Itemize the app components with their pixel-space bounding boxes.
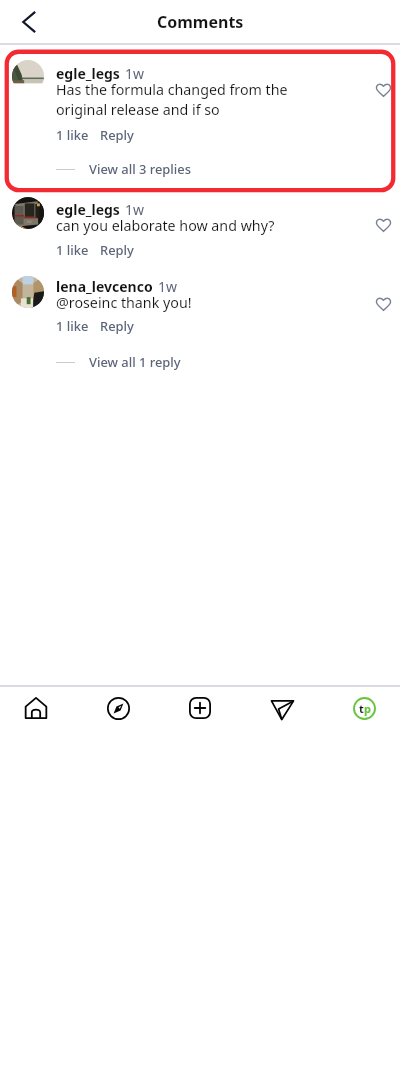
button[interactable]: 1 like xyxy=(56,241,89,259)
button[interactable]: Like xyxy=(370,76,396,102)
button[interactable]: Explore xyxy=(96,686,140,730)
button[interactable]: Reply xyxy=(100,317,134,335)
staticText: egle_legs xyxy=(56,200,120,219)
staticText: View all 1 reply xyxy=(89,353,181,371)
staticText: View all 3 replies xyxy=(89,160,191,178)
button[interactable]: egle_legs profile picture xyxy=(12,60,44,92)
button[interactable]: Comment by egle_legs xyxy=(0,189,400,259)
staticText: 1w xyxy=(125,64,145,83)
staticText: lena_levcenco xyxy=(56,277,153,296)
staticText: @roseinc thank you! xyxy=(56,293,192,312)
staticText: Has the formula changed from the xyxy=(56,80,288,99)
button[interactable]: View all 3 replies xyxy=(56,160,191,178)
staticText: egle_legs xyxy=(56,64,120,83)
staticText: original release and if so xyxy=(56,100,220,119)
staticText: p xyxy=(364,701,371,716)
button[interactable]: egle_legs xyxy=(56,64,145,83)
button[interactable]: lena_levcenco profile picture xyxy=(12,276,44,308)
button[interactable]: egle_legs xyxy=(56,200,145,219)
button[interactable]: Like xyxy=(370,290,396,316)
button[interactable]: Reply xyxy=(100,126,134,144)
button[interactable]: Profile xyxy=(342,686,386,730)
button[interactable]: Messages xyxy=(260,686,304,730)
button[interactable]: Comment by egle_legs xyxy=(0,52,400,144)
button[interactable]: 1 like xyxy=(56,317,89,335)
button[interactable]: Like xyxy=(370,211,396,237)
staticText: can you elaborate how and why? xyxy=(56,216,275,235)
button[interactable]: Create xyxy=(178,686,222,730)
staticText: 1w xyxy=(158,277,178,296)
button[interactable]: egle_legs profile picture xyxy=(12,197,44,229)
button[interactable]: 1 like xyxy=(56,126,89,144)
button[interactable]: lena_levcenco xyxy=(56,277,178,296)
button[interactable]: View all 1 reply xyxy=(56,353,181,371)
button[interactable]: Reply xyxy=(100,241,134,259)
button[interactable]: Home xyxy=(14,686,58,730)
button[interactable]: Comment by lena_levcenco xyxy=(0,268,400,335)
button[interactable]: Back xyxy=(7,0,51,43)
staticText: Comments xyxy=(157,11,244,33)
staticText: 1w xyxy=(125,200,145,219)
staticText: t xyxy=(359,701,364,716)
